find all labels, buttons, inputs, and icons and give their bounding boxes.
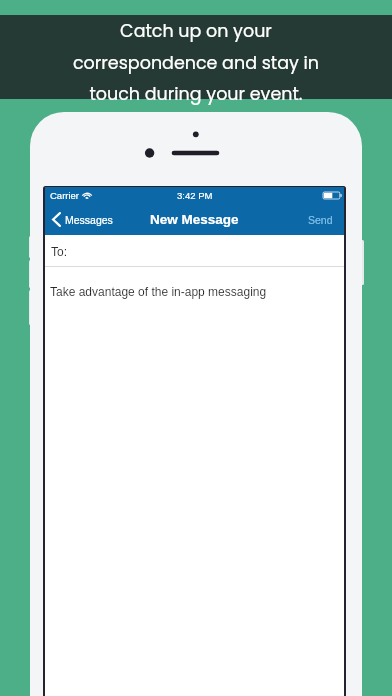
button[interactable]: Messages	[45, 208, 121, 231]
staticText: Catch up on your correspondence and stay…	[0, 19, 392, 106]
staticText: 3:42 PM	[177, 190, 213, 201]
staticText: Take advantage of the in-app messaging	[50, 285, 267, 298]
button[interactable]: To:	[45, 235, 344, 267]
staticText: New Message	[150, 212, 239, 227]
staticText: Carrier	[50, 190, 80, 201]
button[interactable]: Send	[298, 208, 344, 232]
staticText: Send	[308, 214, 333, 226]
staticText: To:	[51, 245, 68, 258]
staticText: Messages	[65, 214, 113, 226]
